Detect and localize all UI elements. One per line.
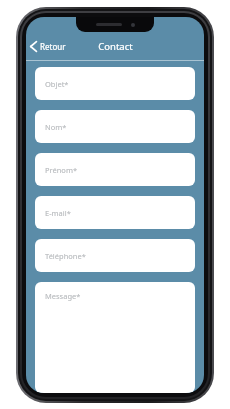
button[interactable]: Retour bbox=[26, 39, 72, 54]
button[interactable]: Objet* bbox=[35, 67, 195, 100]
staticText: Contact bbox=[98, 40, 133, 53]
staticText: Retour bbox=[40, 41, 66, 52]
button[interactable]: Téléphone* bbox=[35, 239, 195, 272]
staticText: E-mail* bbox=[45, 208, 71, 218]
staticText: Prénom* bbox=[45, 165, 78, 175]
staticText: Nom* bbox=[45, 122, 67, 132]
staticText: Objet* bbox=[45, 79, 69, 89]
button[interactable]: Nom* bbox=[35, 110, 195, 143]
button[interactable]: Prénom* bbox=[35, 153, 195, 186]
staticText: Message* bbox=[45, 291, 81, 301]
button[interactable]: Message* bbox=[35, 282, 195, 393]
button[interactable]: E-mail* bbox=[35, 196, 195, 229]
staticText: Téléphone* bbox=[45, 251, 86, 261]
